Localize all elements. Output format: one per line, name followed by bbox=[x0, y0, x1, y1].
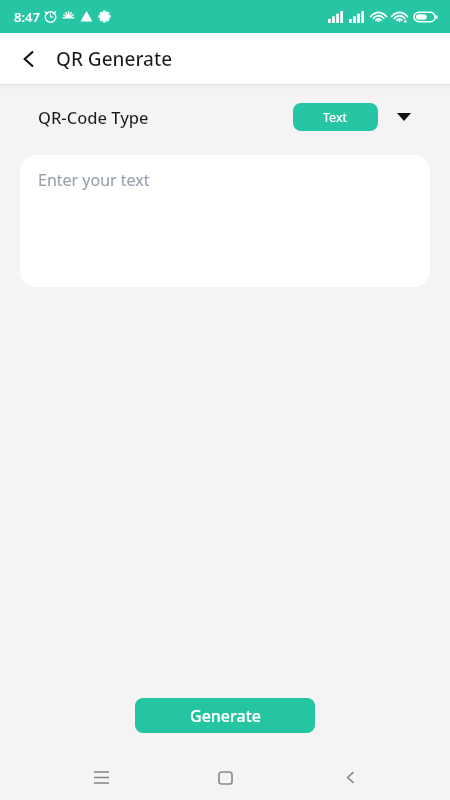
button[interactable]: Back bbox=[326, 755, 374, 800]
button[interactable]: Text bbox=[293, 103, 378, 131]
staticText: Enter your text bbox=[38, 169, 150, 191]
button[interactable]: Select QR code type bbox=[392, 105, 416, 129]
button[interactable]: Back bbox=[8, 38, 50, 80]
staticText: QR-Code Type bbox=[38, 106, 149, 128]
button[interactable]: Recent apps bbox=[77, 755, 125, 800]
staticText: 8:47 bbox=[14, 8, 40, 26]
staticText: Text bbox=[323, 109, 348, 126]
button[interactable]: Home bbox=[201, 755, 249, 800]
button[interactable]: Generate bbox=[135, 698, 315, 733]
staticText: Generate bbox=[190, 705, 261, 727]
staticText: QR Generate bbox=[56, 46, 173, 72]
button[interactable]: Enter your text bbox=[20, 155, 430, 287]
